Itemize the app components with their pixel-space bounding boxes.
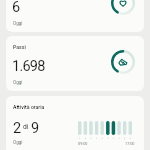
button[interactable]: Passi: [6, 36, 144, 91]
button[interactable]: Frequenza cardiaca: [6, 0, 144, 32]
staticText: 09:00: [78, 141, 88, 145]
staticText: di: [23, 123, 29, 131]
staticText: Attività oraria: [13, 104, 45, 110]
staticText: 17:00: [125, 141, 135, 145]
staticText: Oggi: [13, 21, 23, 26]
staticText: Oggi: [13, 80, 23, 85]
staticText: 6: [12, 0, 20, 16]
other: Frequenza cardiaca: [111, 0, 135, 15]
staticText: 1.698: [12, 58, 45, 75]
staticText: Oggi: [13, 140, 23, 145]
staticText: Passi: [13, 44, 26, 50]
other: Passi: [111, 50, 135, 74]
button[interactable]: Attività oraria: [6, 96, 144, 150]
staticText: 2: [13, 120, 21, 137]
staticText: 9: [31, 120, 39, 137]
